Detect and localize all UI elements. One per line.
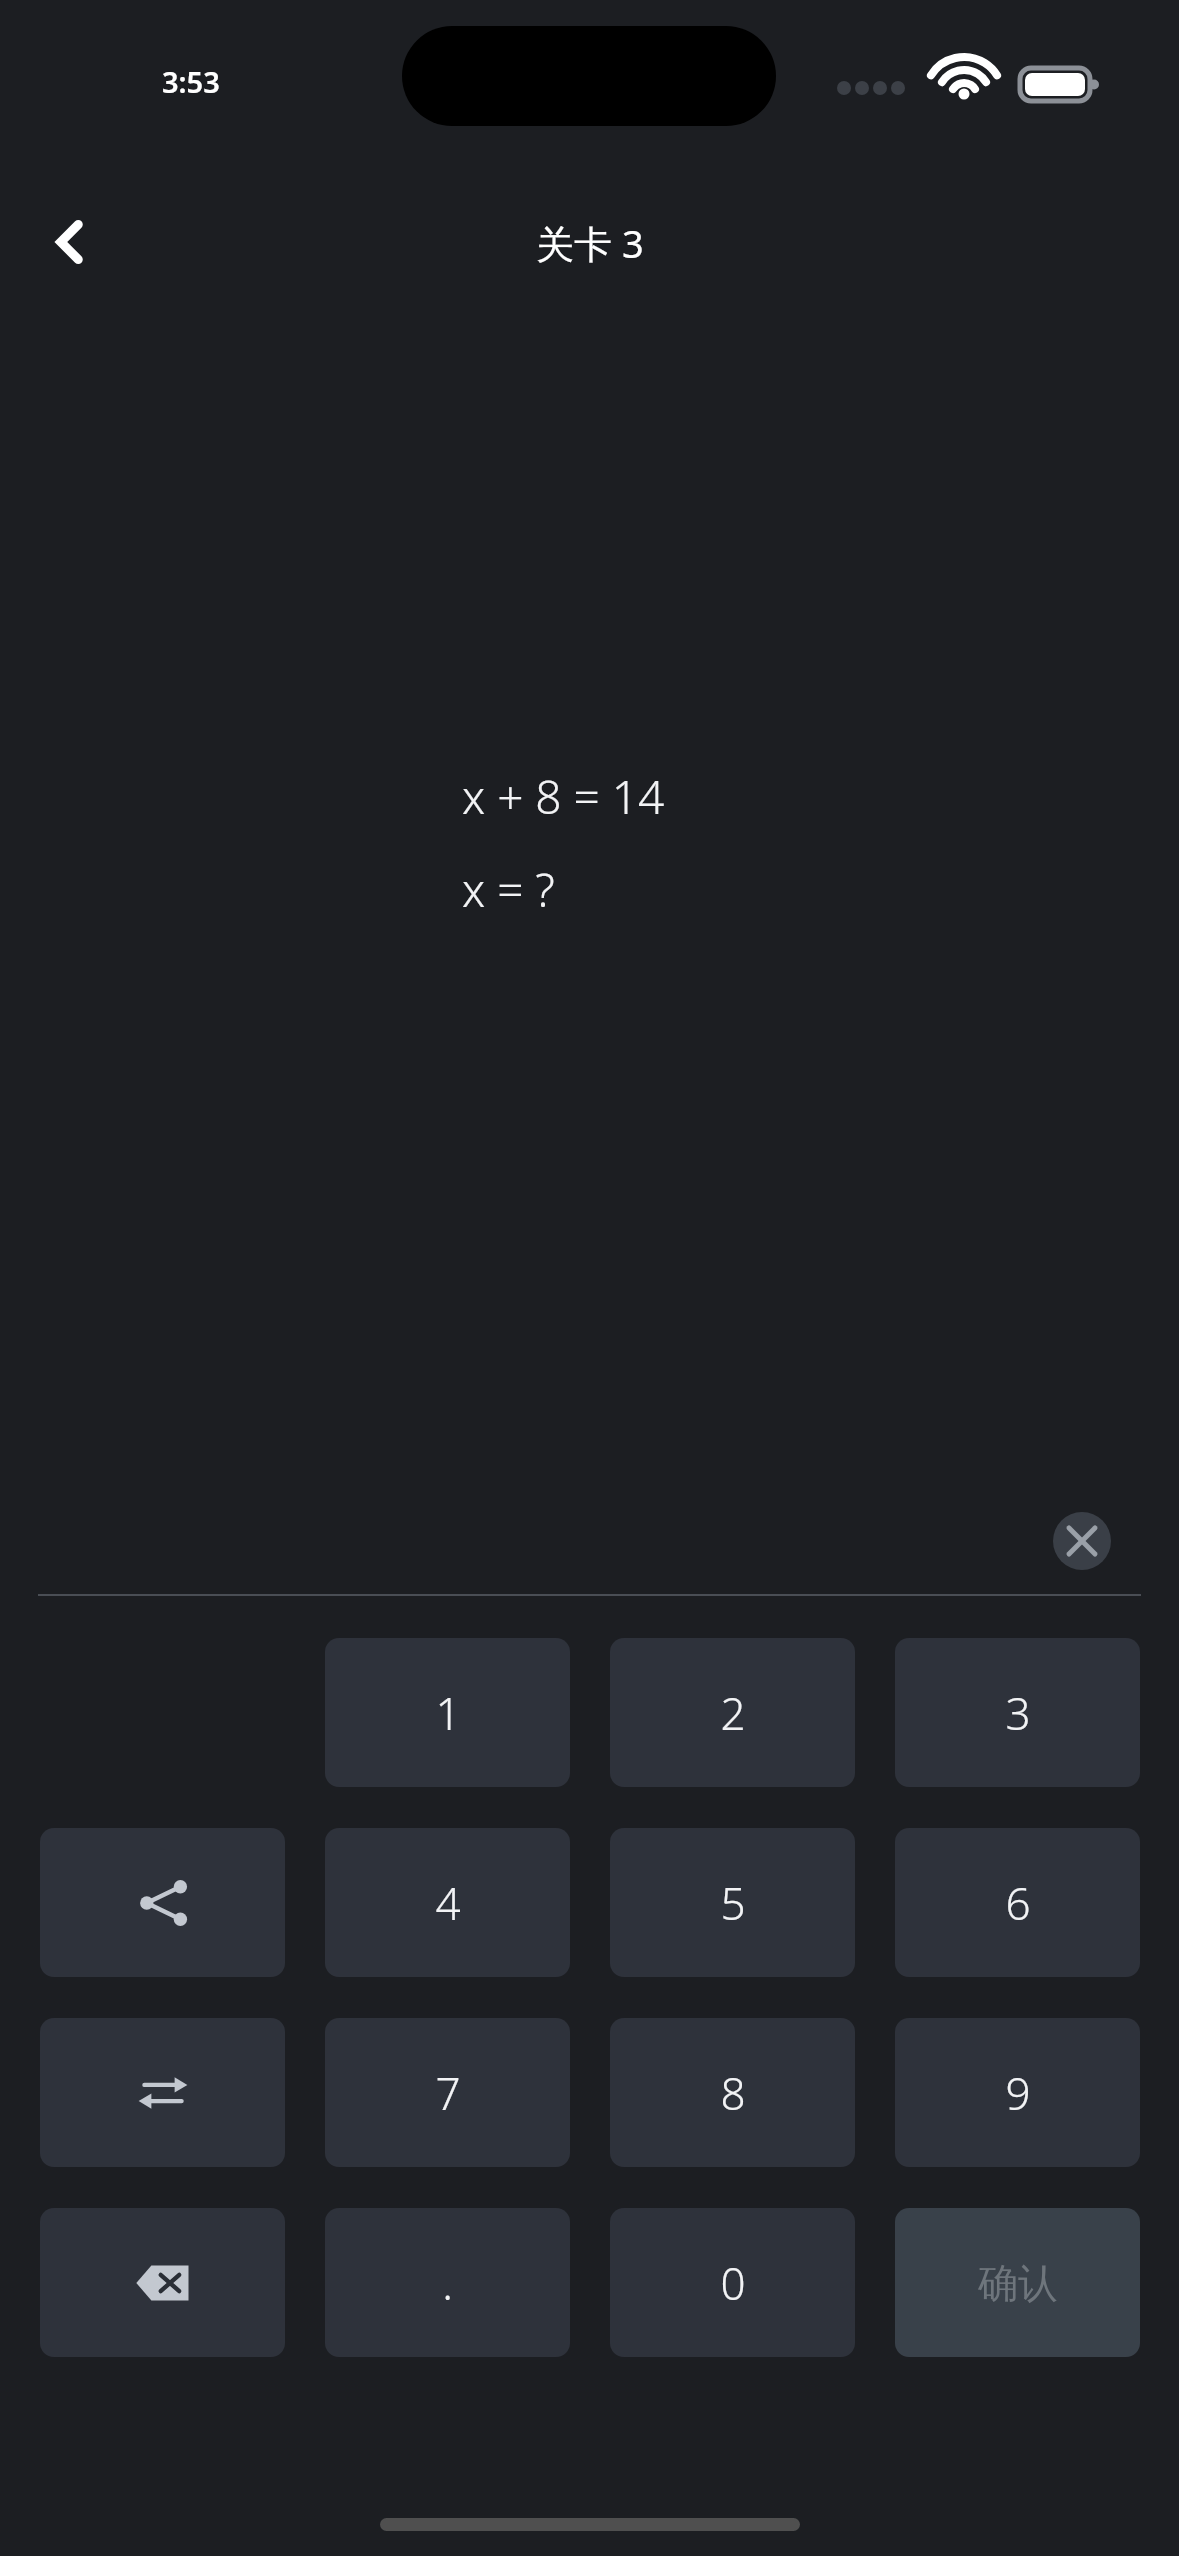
staticText: 3:53 bbox=[162, 62, 220, 101]
button[interactable]: 1 bbox=[325, 1638, 570, 1787]
button[interactable]: 2 bbox=[610, 1638, 855, 1787]
staticText: x = ? bbox=[462, 858, 555, 921]
button[interactable]: 9 bbox=[895, 2018, 1140, 2167]
staticText: 确认 bbox=[978, 2258, 1058, 2308]
button[interactable]: Close bbox=[1053, 1512, 1111, 1570]
button[interactable]: 4 bbox=[325, 1828, 570, 1977]
staticText: 1 bbox=[435, 1683, 461, 1743]
staticText: 8 bbox=[720, 2063, 746, 2123]
staticText: 关卡 3 bbox=[536, 217, 644, 269]
staticText: x + 8 = 14 bbox=[462, 765, 665, 828]
button[interactable]: 0 bbox=[610, 2208, 855, 2357]
staticText: 3 bbox=[1005, 1683, 1031, 1743]
button[interactable]: 3 bbox=[895, 1638, 1140, 1787]
button[interactable]: Swap bbox=[40, 2018, 285, 2167]
button[interactable]: 6 bbox=[895, 1828, 1140, 1977]
button[interactable]: 5 bbox=[610, 1828, 855, 1977]
staticText: 0 bbox=[720, 2253, 746, 2313]
button[interactable]: 确认 bbox=[895, 2208, 1140, 2357]
button[interactable]: Backspace bbox=[40, 2208, 285, 2357]
staticText: . bbox=[442, 2253, 453, 2313]
staticText: 5 bbox=[720, 1873, 746, 1933]
button[interactable]: Share bbox=[40, 1828, 285, 1977]
staticText: 7 bbox=[435, 2063, 461, 2123]
staticText: 9 bbox=[1005, 2063, 1031, 2123]
button[interactable]: 7 bbox=[325, 2018, 570, 2167]
button[interactable]: 8 bbox=[610, 2018, 855, 2167]
staticText: 6 bbox=[1005, 1873, 1031, 1933]
staticText: 2 bbox=[720, 1683, 746, 1743]
button[interactable]: Back bbox=[20, 192, 120, 292]
button[interactable]: . bbox=[325, 2208, 570, 2357]
staticText: 4 bbox=[435, 1873, 461, 1933]
